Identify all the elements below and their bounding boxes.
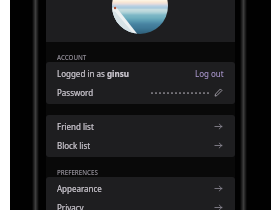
staticText: ACCOUNT (57, 53, 87, 61)
staticText: Friend list (57, 121, 94, 132)
staticText: Privacy (57, 202, 84, 210)
staticText: Log out (195, 68, 224, 79)
staticText: Block list (57, 140, 91, 151)
other: Friend list (213, 121, 224, 132)
button[interactable]: Privacy (46, 198, 235, 210)
button[interactable]: Edit password (213, 87, 224, 98)
staticText: Password (57, 87, 94, 98)
button[interactable]: Friend list (46, 117, 235, 136)
button[interactable]: Profile picture (112, 0, 168, 34)
other: Privacy (213, 202, 224, 210)
button[interactable]: Logged in as (46, 64, 235, 83)
other: Appearance (213, 183, 224, 194)
button[interactable]: Block list (46, 136, 235, 155)
staticText: PREFERENCES (57, 168, 98, 176)
button[interactable]: Password (46, 83, 235, 102)
staticText: ginsu (107, 68, 129, 79)
staticText: Logged in as (57, 68, 107, 79)
staticText: Appearance (57, 183, 102, 194)
button[interactable]: Appearance (46, 179, 235, 198)
other: Block list (213, 140, 224, 151)
